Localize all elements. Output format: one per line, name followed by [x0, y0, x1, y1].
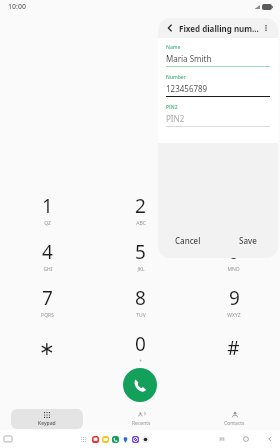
staticText: 0 — [135, 331, 146, 357]
button[interactable]: 6 — [187, 236, 280, 276]
staticText: + — [139, 358, 142, 365]
staticText: Recents — [132, 420, 151, 427]
button[interactable]: 9 — [187, 282, 280, 322]
staticText: WXYZ — [227, 312, 241, 319]
button[interactable]: App — [92, 436, 99, 443]
staticText: PIN2 — [166, 113, 185, 124]
button[interactable]: ∗ — [0, 328, 94, 368]
button[interactable]: Back — [164, 22, 176, 34]
staticText: MNO — [227, 266, 240, 273]
staticText: 10:00 — [8, 2, 26, 12]
button[interactable]: 5 — [94, 236, 187, 276]
staticText: Keypad — [38, 420, 56, 427]
button[interactable]: App — [142, 436, 149, 443]
staticText: TUV — [136, 312, 146, 319]
button[interactable]: 7 — [0, 282, 94, 322]
staticText: 7 — [42, 285, 53, 311]
staticText: Fixed dialling num... — [179, 23, 260, 34]
button[interactable]: Contacts — [198, 409, 270, 429]
staticText: 1 — [42, 193, 53, 219]
staticText: Cancel — [175, 235, 201, 246]
button[interactable]: 0 — [94, 328, 187, 368]
staticText: ABC — [136, 220, 146, 227]
staticText: Maria Smith — [166, 53, 212, 64]
staticText: QZ — [44, 220, 51, 227]
staticText: 5 — [135, 239, 146, 265]
staticText: 9 — [229, 285, 240, 311]
staticText: 2 — [135, 193, 146, 219]
button[interactable]: Save — [218, 226, 278, 254]
button[interactable]: Keypad — [11, 409, 83, 429]
button[interactable]: 4 — [0, 236, 94, 276]
button[interactable]: 1 — [0, 190, 94, 230]
button[interactable]: 8 — [94, 282, 187, 322]
staticText: Contacts — [224, 420, 245, 427]
button[interactable]: Recents — [105, 409, 177, 429]
button[interactable]: Cancel — [158, 226, 218, 254]
button[interactable]: App — [132, 436, 139, 443]
button[interactable]: App — [102, 436, 109, 443]
button[interactable]: Call — [123, 368, 157, 402]
staticText: # — [227, 335, 240, 361]
staticText: 4 — [42, 239, 53, 265]
staticText: 123456789 — [166, 83, 208, 94]
staticText: GHI — [43, 266, 53, 273]
staticText: 8 — [135, 285, 146, 311]
staticText: PIN2 — [166, 104, 178, 111]
staticText: 6 — [228, 239, 239, 265]
staticText: ∗ — [39, 337, 55, 359]
button[interactable]: # — [187, 328, 280, 368]
staticText: Save — [239, 235, 257, 246]
button[interactable]: App — [112, 436, 119, 443]
button[interactable]: 2 — [94, 190, 187, 230]
staticText: PQRS — [41, 312, 54, 319]
staticText: Name — [166, 44, 181, 51]
staticText: Number — [166, 74, 186, 81]
staticText: JKL — [137, 266, 145, 273]
button[interactable]: More options — [260, 22, 272, 34]
